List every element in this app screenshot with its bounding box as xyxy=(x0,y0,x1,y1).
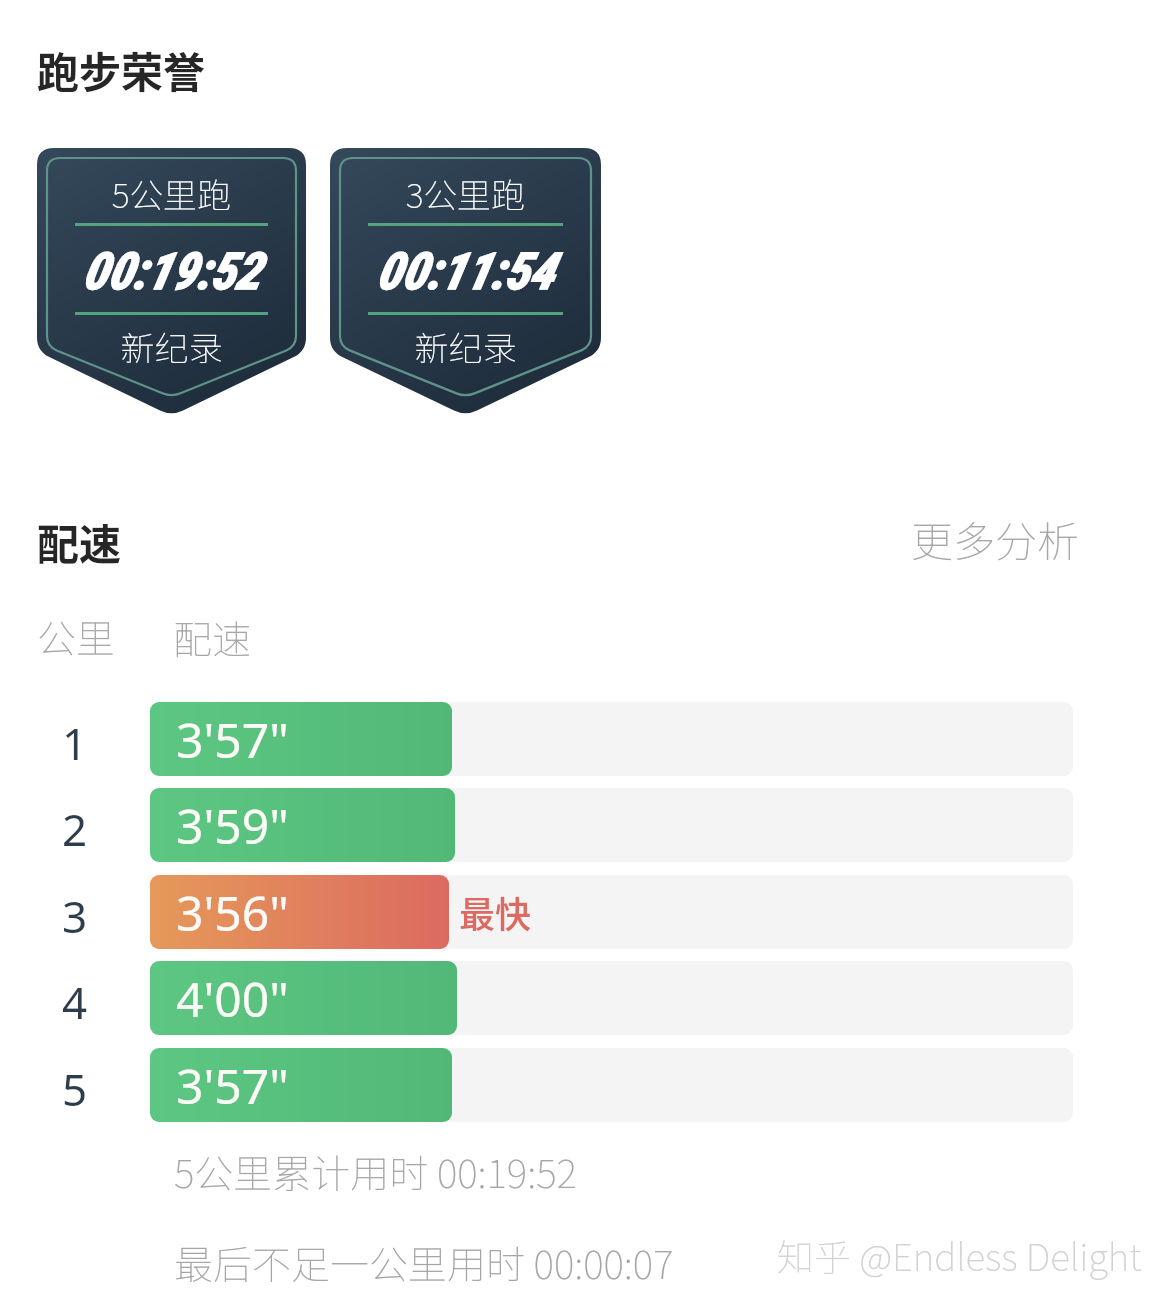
staticText: 00:19:52 xyxy=(37,242,306,302)
button[interactable]: 3公里跑 xyxy=(330,148,601,416)
button[interactable]: 4 xyxy=(30,961,1073,1035)
staticText: 3'56" xyxy=(176,880,289,945)
staticText: 公里 xyxy=(37,608,116,664)
staticText: 更多分析 xyxy=(911,508,1080,569)
staticText: 4 xyxy=(62,972,88,1032)
button[interactable]: 5 xyxy=(30,1048,1073,1122)
staticText: 00:11:54 xyxy=(330,242,601,302)
staticText: 最快 xyxy=(459,886,532,938)
staticText: 最后不足一公里用时 00:00:07 xyxy=(174,1234,674,1290)
staticText: 新纪录 xyxy=(37,322,306,371)
staticText: 5公里累计用时 00:19:52 xyxy=(174,1143,577,1199)
staticText: 3'59" xyxy=(176,793,289,858)
button[interactable]: 1 xyxy=(30,702,1073,776)
staticText: 5 xyxy=(62,1059,88,1119)
button[interactable]: 3 xyxy=(30,875,1073,949)
staticText: 4'00" xyxy=(176,966,289,1031)
staticText: 3'57" xyxy=(176,707,289,772)
staticText: 配速 xyxy=(37,511,122,572)
button[interactable]: 2 xyxy=(30,788,1073,862)
staticText: 2 xyxy=(62,799,88,859)
staticText: 新纪录 xyxy=(330,322,601,371)
staticText: 配速 xyxy=(173,609,252,665)
staticText: 5公里跑 xyxy=(37,169,306,218)
button[interactable]: 更多分析 xyxy=(911,508,1080,569)
staticText: 3'57" xyxy=(176,1053,289,1118)
staticText: 1 xyxy=(62,713,88,773)
staticText: 3 xyxy=(62,886,88,946)
staticText: 跑步荣誉 xyxy=(37,39,206,100)
staticText: 3公里跑 xyxy=(330,169,601,218)
button[interactable]: 5公里跑 xyxy=(37,148,306,416)
staticText: 知乎 @Endless Delight xyxy=(777,1228,1142,1282)
